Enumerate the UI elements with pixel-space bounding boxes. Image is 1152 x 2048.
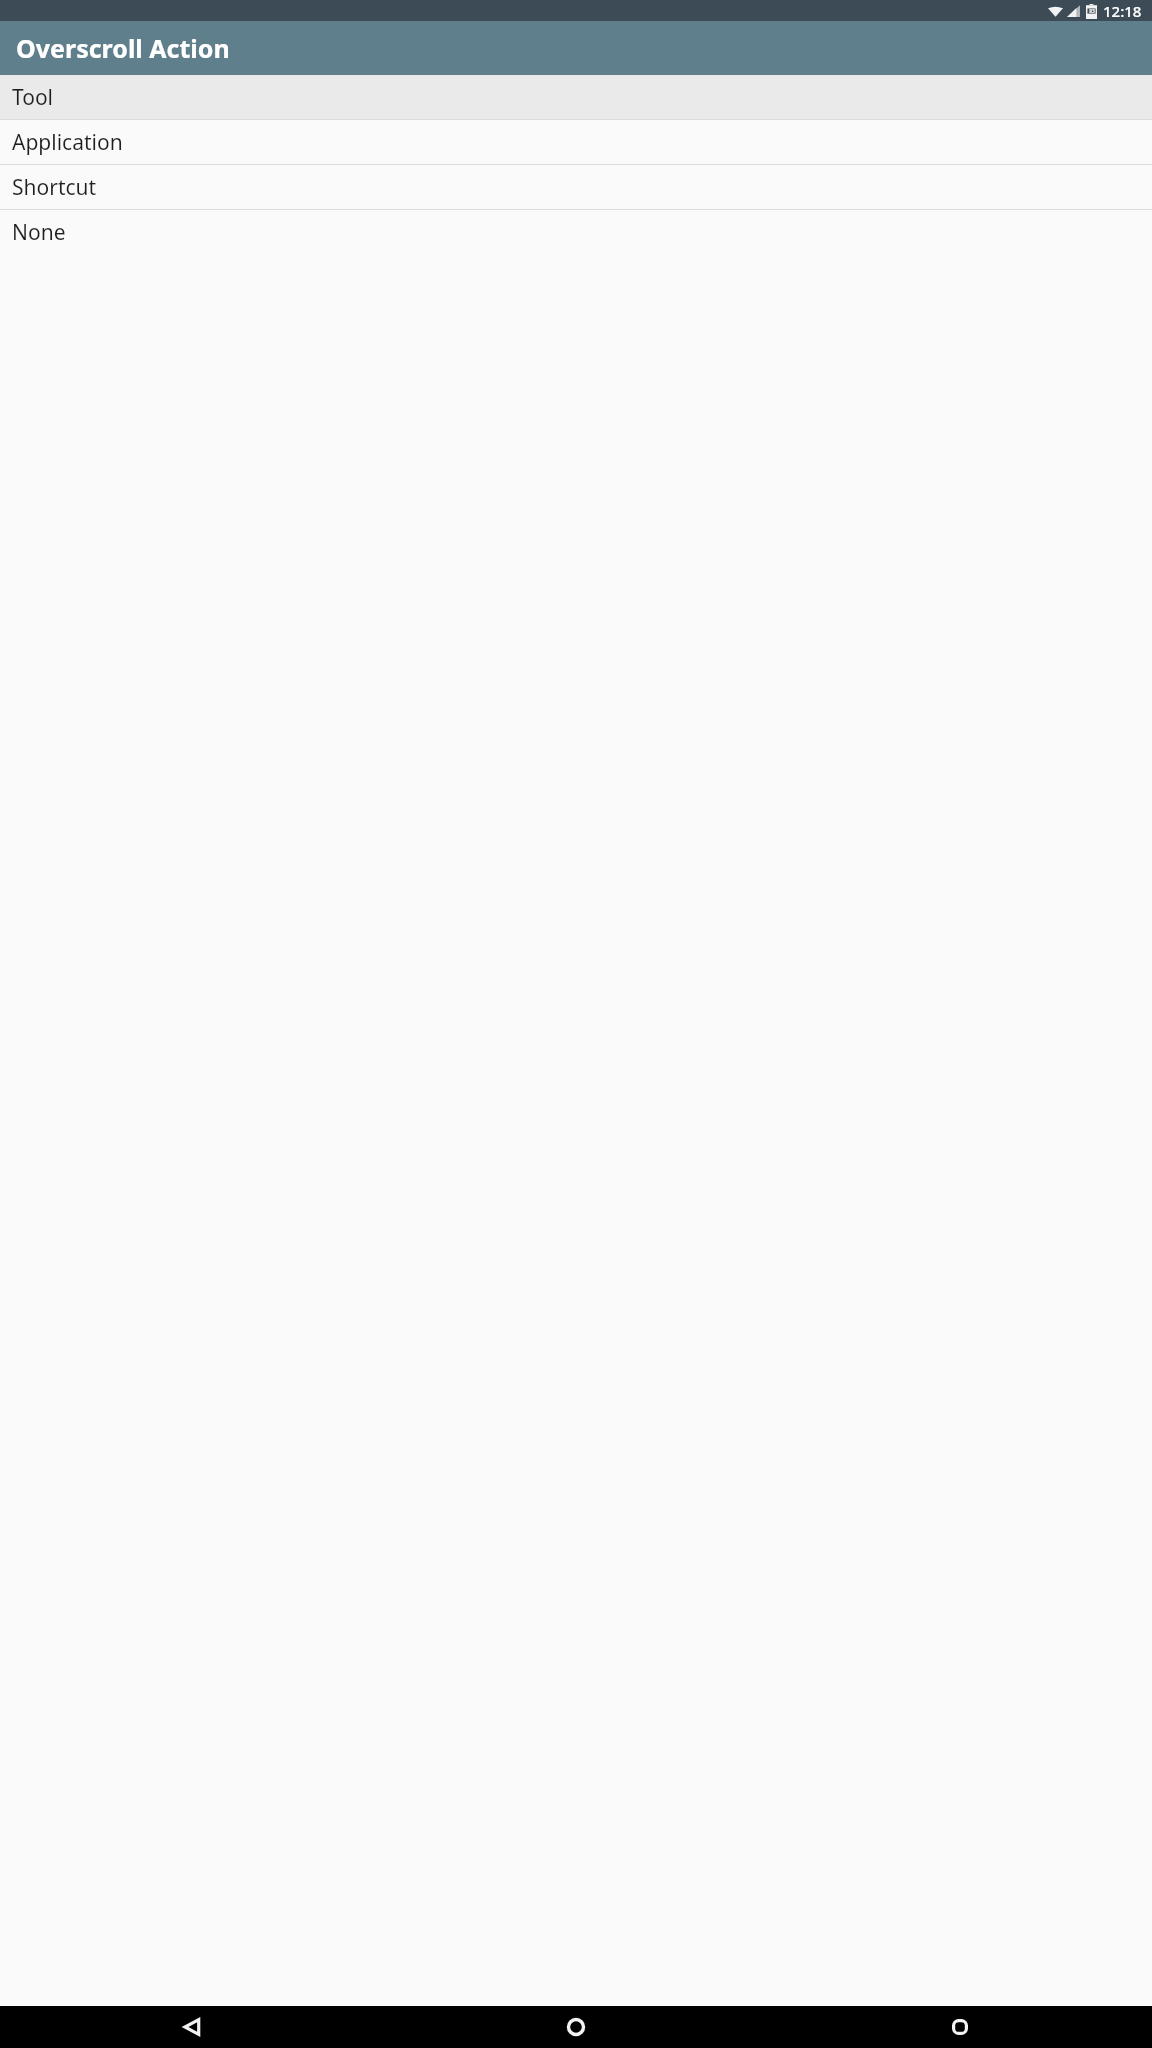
staticText: 12:18 — [1103, 1, 1142, 21]
staticText: Tool — [12, 83, 54, 112]
button[interactable]: Shortcut — [0, 165, 1152, 209]
staticText: 83 — [1089, 8, 1095, 15]
button[interactable]: Tool — [0, 75, 1152, 119]
button[interactable]: None — [0, 210, 1152, 254]
button[interactable]: Back — [0, 2006, 384, 2048]
button[interactable]: Recent apps — [768, 2006, 1152, 2048]
staticText: Overscroll Action — [16, 31, 230, 65]
staticText: Application — [12, 128, 123, 157]
staticText: Shortcut — [12, 173, 97, 202]
staticText: None — [12, 218, 66, 247]
button[interactable]: Application — [0, 120, 1152, 164]
button[interactable]: Home — [384, 2006, 768, 2048]
